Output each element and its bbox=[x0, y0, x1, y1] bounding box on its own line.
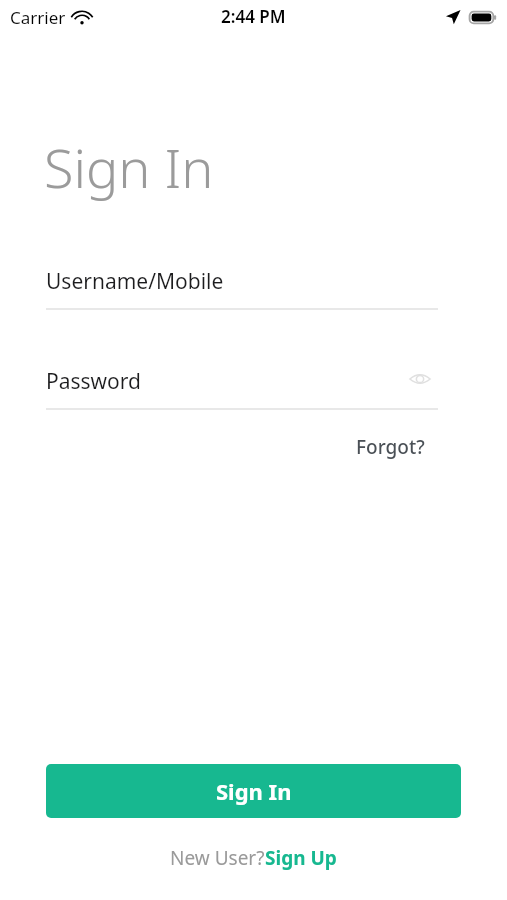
staticText: Sign In bbox=[216, 776, 292, 806]
staticText: Carrier bbox=[10, 6, 66, 29]
staticText: Username/Mobile bbox=[46, 267, 224, 296]
staticText: 2:44 PM bbox=[221, 5, 286, 28]
button[interactable]: Username/Mobile bbox=[46, 258, 438, 310]
button[interactable]: Sign In bbox=[46, 764, 461, 818]
button[interactable]: Forgot? bbox=[356, 430, 426, 464]
staticText: Sign Up bbox=[265, 845, 337, 871]
staticText: Password bbox=[46, 367, 141, 396]
button[interactable]: Password bbox=[46, 358, 438, 410]
staticText: New User? bbox=[170, 845, 265, 871]
staticText: Sign In bbox=[44, 130, 214, 204]
button[interactable]: Sign Up bbox=[265, 845, 337, 871]
button[interactable]: Show password bbox=[404, 363, 436, 395]
staticText: Forgot? bbox=[356, 434, 425, 460]
